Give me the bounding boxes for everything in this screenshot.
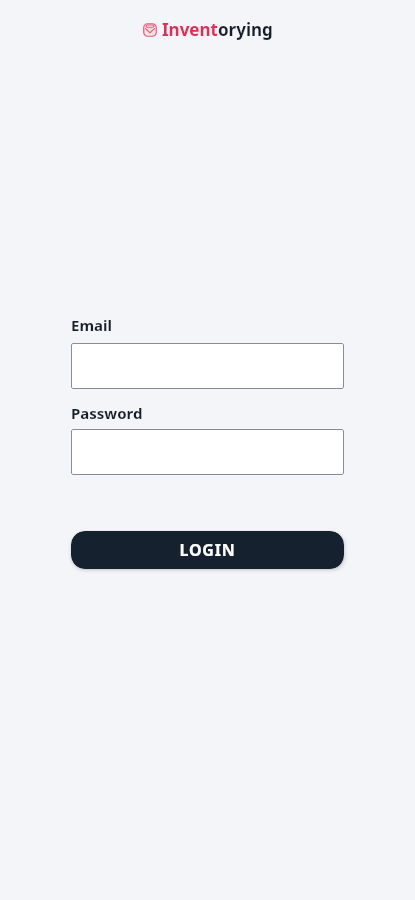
button[interactable]: LOGIN	[71, 531, 344, 569]
staticText: Email	[71, 315, 112, 335]
staticText: Inventorying	[162, 18, 273, 41]
staticText: LOGIN	[179, 539, 236, 561]
button[interactable]	[71, 429, 344, 475]
staticText: Password	[71, 403, 143, 423]
button[interactable]	[71, 343, 344, 389]
